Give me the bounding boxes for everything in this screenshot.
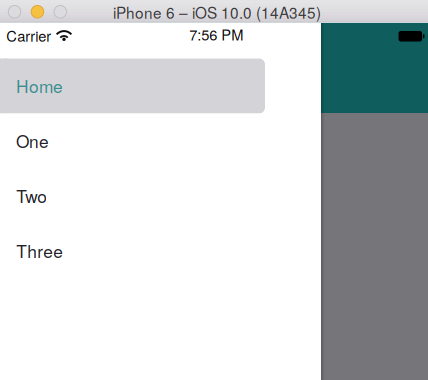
staticText: Two — [16, 183, 47, 208]
staticText: 7:56 PM — [189, 24, 243, 45]
button[interactable]: Three — [0, 223, 265, 278]
staticText: One — [16, 128, 49, 153]
button[interactable]: Minimise — [31, 5, 44, 18]
button[interactable]: Two — [0, 168, 265, 223]
button[interactable]: Zoom — [54, 5, 66, 18]
button[interactable]: Close — [8, 5, 21, 18]
staticText: iPhone 6 – iOS 10.0 (14A345) — [113, 1, 321, 23]
staticText: Home — [16, 73, 63, 98]
button[interactable]: Home — [0, 58, 265, 113]
button[interactable]: One — [0, 113, 265, 168]
staticText: Three — [16, 238, 63, 263]
staticText: Carrier — [6, 25, 51, 46]
